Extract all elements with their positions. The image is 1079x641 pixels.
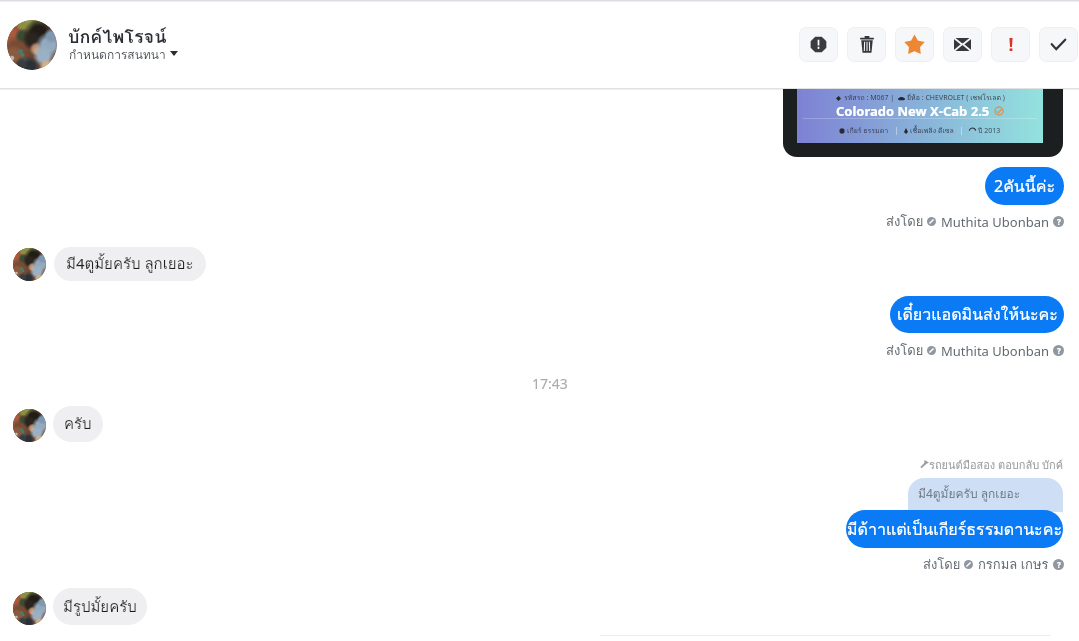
staticText: มีด้าาแต่เป็นเกียร์ธรรมดานะคะ <box>847 517 1062 542</box>
button[interactable]: กำหนดการสนทนา <box>69 45 179 61</box>
staticText: Colorado New X-Cab 2.5 <box>836 102 990 120</box>
staticText: ยี่ห้อ : CHEVROLET ( เชฟโรเลต ) <box>907 92 1005 103</box>
button[interactable]: มีรูปมั้ยครับ <box>53 588 147 625</box>
staticText: บักค์ไพโรจน์ <box>68 22 168 44</box>
button[interactable]: บักค์ไพโรจน์ <box>68 22 168 44</box>
staticText: ส่งโดย <box>886 340 924 361</box>
staticText: ส่งโดย <box>923 554 961 575</box>
button[interactable]: มี4ตูมั้ยครับ ลูกเยอะ <box>54 247 206 281</box>
button[interactable]: Delete <box>847 27 886 62</box>
button[interactable]: Mark important <box>991 27 1030 62</box>
staticText: Muthita Ubonban <box>941 213 1049 231</box>
staticText: ? <box>1057 216 1061 227</box>
staticText: รหัสรถ : M067 | <box>844 92 895 103</box>
button[interactable]: 2คันนี้ค่ะ <box>985 167 1064 205</box>
button[interactable]: Report spam <box>799 27 838 62</box>
staticText: กำหนดการสนทนา <box>69 45 166 61</box>
button[interactable]: Mark done <box>1039 27 1078 62</box>
staticText: รถยนต์มือสอง ตอบกลับ บักค์ <box>929 456 1064 473</box>
staticText: มี4ตูมั้ยครับ ลูกเยอะ <box>918 484 1021 503</box>
button[interactable]: ครับ <box>53 406 103 442</box>
button[interactable]: Mark unread <box>943 27 982 62</box>
staticText: มีรูปมั้ยครับ <box>63 595 137 619</box>
staticText: 2คันนี้ค่ะ <box>994 174 1056 199</box>
staticText: เชื้อเพลิง ดีเซล <box>910 125 954 136</box>
staticText: ? <box>1057 559 1061 570</box>
staticText: เดี๋ยวแอดมินส่งให้นะคะ <box>897 302 1058 327</box>
staticText: ส่งโดย <box>886 211 924 232</box>
staticText: เกียร์ ธรรมดา <box>847 125 889 136</box>
staticText: มี4ตูมั้ยครับ ลูกเยอะ <box>66 252 194 276</box>
button[interactable]: เดี๋ยวแอดมินส่งให้นะคะ <box>890 296 1064 333</box>
staticText: ครับ <box>64 412 92 436</box>
staticText: ปี 2013 <box>978 125 1001 136</box>
staticText: 17:43 <box>532 374 568 393</box>
button[interactable]: Car listing image <box>783 89 1063 157</box>
button[interactable]: Star <box>895 27 934 62</box>
staticText: ? <box>1057 345 1061 356</box>
button[interactable]: Profile photo <box>7 20 57 70</box>
button[interactable]: มีด้าาแต่เป็นเกียร์ธรรมดานะคะ <box>846 510 1063 548</box>
staticText: กรกมล เกษร <box>978 554 1049 575</box>
staticText: Muthita Ubonban <box>941 342 1049 360</box>
button[interactable]: มี4ตูมั้ยครับ ลูกเยอะ <box>908 478 1063 512</box>
